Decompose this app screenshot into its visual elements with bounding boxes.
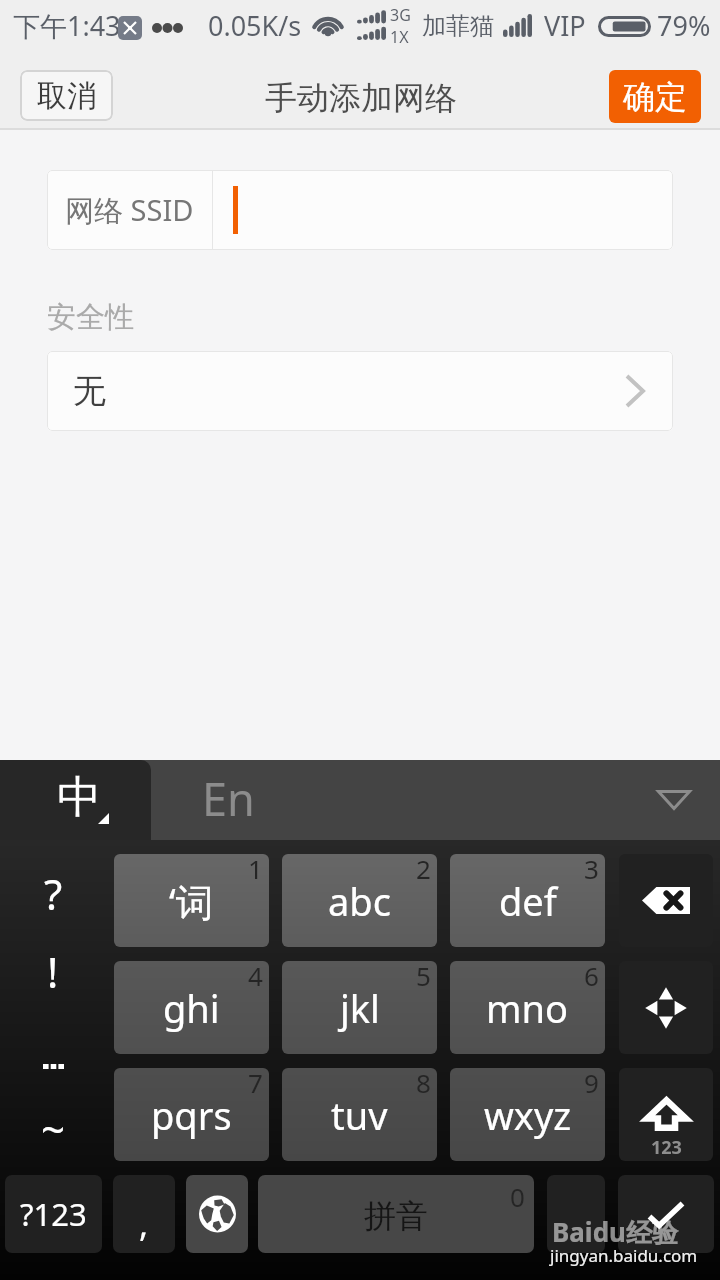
- staticText: ‘词: [169, 875, 214, 927]
- button[interactable]: Shift to numbers: [619, 1068, 713, 1161]
- button[interactable]: Hide keyboard: [628, 760, 720, 840]
- staticText: 3: [584, 854, 599, 886]
- button[interactable]: pqrs: [114, 1068, 269, 1161]
- button[interactable]: jkl: [282, 961, 437, 1054]
- staticText: jkl: [340, 982, 380, 1034]
- staticText: 9: [584, 1068, 599, 1100]
- staticText: def: [499, 875, 557, 927]
- button[interactable]: 拼音: [258, 1175, 534, 1253]
- button[interactable]: Emoji: [547, 1175, 605, 1253]
- staticText: ghi: [163, 982, 220, 1034]
- staticText: mno: [486, 982, 569, 1034]
- staticText: ~: [41, 1100, 66, 1157]
- staticText: 中: [57, 770, 101, 825]
- staticText: 3G: [390, 4, 411, 26]
- staticText: 8: [416, 1068, 431, 1100]
- button[interactable]: ?: [0, 854, 110, 932]
- button[interactable]: En: [151, 760, 301, 840]
- staticText: 加菲猫: [422, 11, 494, 41]
- button[interactable]: tuv: [282, 1068, 437, 1161]
- staticText: 79%: [657, 7, 711, 44]
- button[interactable]: def: [450, 854, 605, 947]
- staticText: 6: [584, 961, 599, 993]
- staticText: 取消: [37, 77, 97, 115]
- staticText: 0: [510, 1179, 525, 1214]
- button[interactable]: 中: [0, 760, 151, 840]
- staticText: 无: [73, 370, 106, 412]
- button[interactable]: ,: [113, 1175, 175, 1253]
- button[interactable]: mno: [450, 961, 605, 1054]
- button[interactable]: wxyz: [450, 1068, 605, 1161]
- staticText: 2: [416, 854, 431, 886]
- button[interactable]: ‘词: [114, 854, 269, 947]
- staticText: 下午1:43: [13, 7, 121, 44]
- staticText: 手动添加网络: [265, 78, 457, 118]
- staticText: 拼音: [364, 1196, 428, 1236]
- button[interactable]: !: [0, 932, 110, 1010]
- button[interactable]: ~: [0, 1089, 110, 1167]
- button[interactable]: ?123: [5, 1175, 102, 1253]
- staticText: 安全性: [47, 299, 134, 336]
- staticText: pqrs: [151, 1089, 232, 1141]
- staticText: 1X: [390, 26, 409, 48]
- button[interactable]: 取消: [20, 70, 113, 121]
- staticText: 7: [248, 1068, 263, 1100]
- staticText: jingyan.baidu.com: [550, 1244, 698, 1267]
- staticText: Baidu经验: [552, 1214, 678, 1250]
- staticText: tuv: [331, 1089, 388, 1141]
- staticText: ?: [44, 865, 63, 922]
- button[interactable]: abc: [282, 854, 437, 947]
- button[interactable]: ghi: [114, 961, 269, 1054]
- staticText: 4: [248, 961, 263, 993]
- button[interactable]: Delete: [619, 854, 713, 947]
- button[interactable]: [0, 1011, 110, 1089]
- staticText: 123: [651, 1135, 682, 1160]
- staticText: abc: [328, 875, 391, 927]
- staticText: 网络 SSID: [65, 190, 194, 230]
- staticText: 1: [248, 854, 263, 886]
- staticText: 确定: [623, 77, 687, 117]
- button[interactable]: 网络 SSID: [47, 170, 673, 250]
- button[interactable]: 确定: [609, 70, 701, 123]
- staticText: wxyz: [484, 1089, 572, 1141]
- button[interactable]: Enter: [618, 1175, 714, 1253]
- staticText: 5: [416, 961, 431, 993]
- staticText: En: [202, 768, 255, 829]
- staticText: !: [47, 943, 59, 1000]
- button[interactable]: 无: [47, 351, 673, 431]
- staticText: 0.05K/s: [208, 7, 302, 44]
- staticText: ?123: [20, 1193, 87, 1235]
- staticText: VIP: [544, 7, 586, 44]
- button[interactable]: Move cursor: [619, 961, 713, 1054]
- staticText: ,: [139, 1201, 149, 1247]
- button[interactable]: Switch language: [186, 1175, 248, 1253]
